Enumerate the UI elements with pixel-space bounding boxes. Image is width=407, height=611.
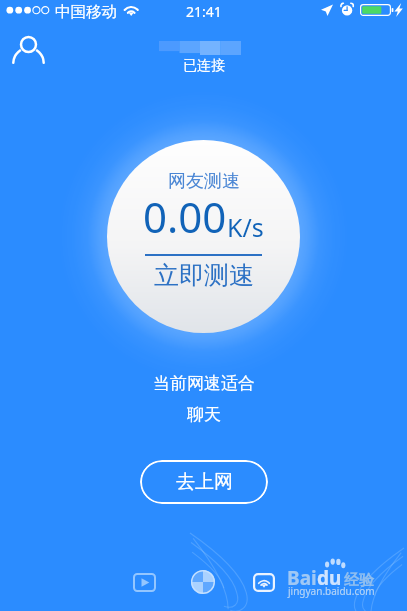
button[interactable]: WiFi: [244, 563, 284, 601]
button[interactable]: Account: [9, 31, 49, 67]
button[interactable]: 网友测速: [107, 140, 300, 333]
staticText: 中国移动: [55, 2, 117, 20]
staticText: du: [317, 565, 342, 591]
button[interactable]: 去上网: [140, 460, 268, 504]
staticText: Bai: [287, 565, 317, 591]
staticText: 经验: [344, 571, 374, 590]
staticText: K/s: [227, 210, 264, 244]
staticText: 去上网: [176, 470, 233, 494]
staticText: 当前网速适合: [153, 373, 255, 394]
staticText: jingyan.baidu.com: [288, 584, 375, 598]
button[interactable]: Browser: [183, 562, 223, 602]
staticText: 21:41: [186, 2, 222, 20]
staticText: 立即测速: [154, 260, 254, 291]
staticText: 聊天: [187, 404, 221, 425]
button[interactable]: Video: [124, 563, 164, 601]
staticText: 0.00: [143, 188, 227, 245]
staticText: 已连接: [183, 57, 225, 75]
staticText: 网友测速: [168, 170, 240, 193]
